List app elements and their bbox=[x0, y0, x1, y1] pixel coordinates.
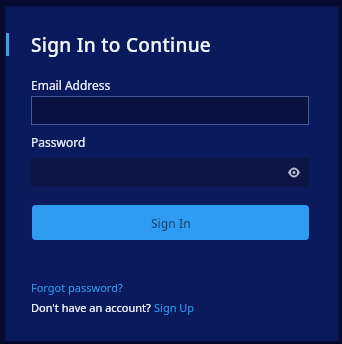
button[interactable] bbox=[31, 158, 309, 187]
button[interactable]: Sign Up bbox=[154, 300, 195, 315]
button[interactable] bbox=[31, 96, 309, 125]
button[interactable]: Sign In bbox=[32, 205, 309, 240]
staticText: Sign In to Continue bbox=[31, 32, 212, 58]
staticText: Don't have an account? bbox=[31, 300, 154, 315]
button[interactable]: Forgot password? bbox=[31, 280, 123, 295]
staticText: Password bbox=[31, 134, 86, 150]
staticText: Sign In bbox=[151, 215, 191, 231]
staticText: Email Address bbox=[31, 77, 111, 93]
